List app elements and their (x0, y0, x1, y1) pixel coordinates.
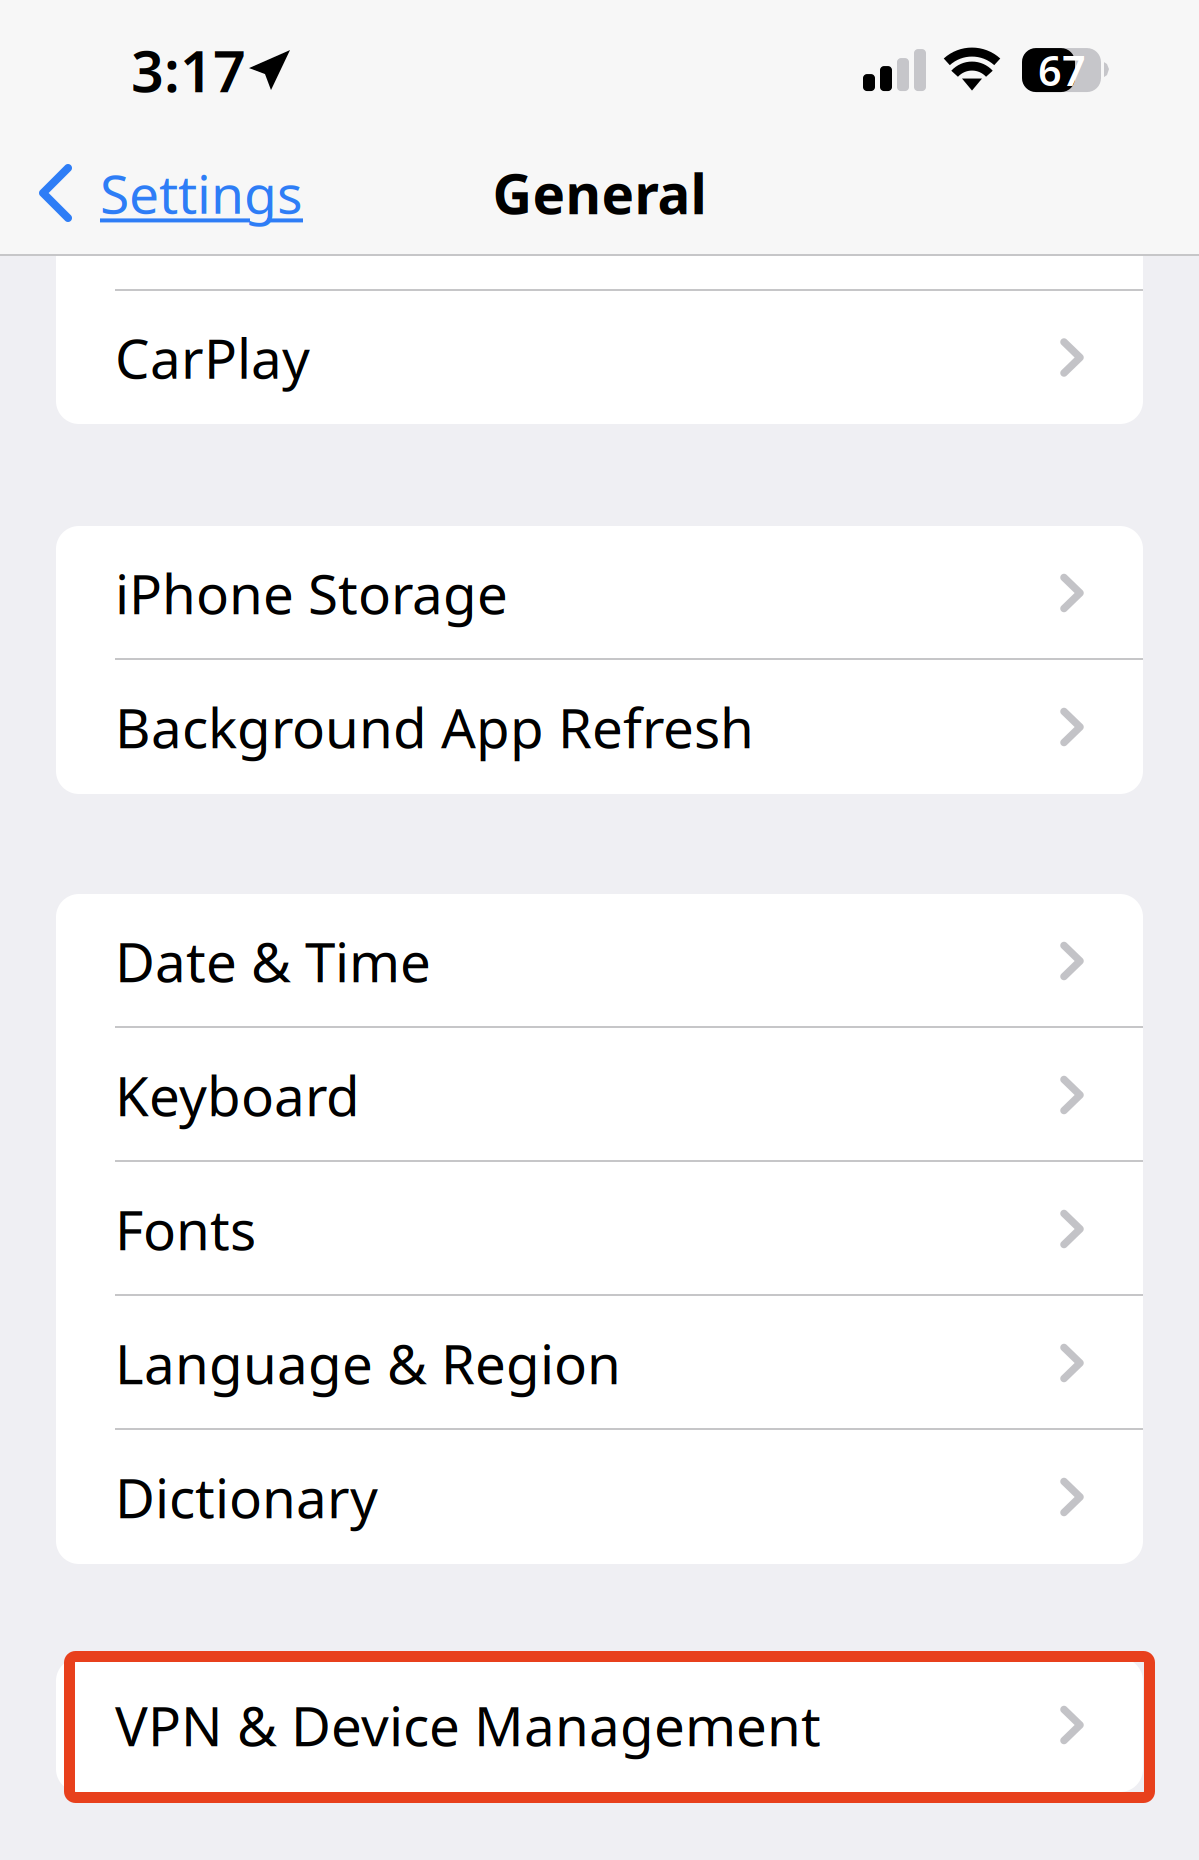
staticText: VPN & Device Management (115, 1689, 821, 1761)
staticText: CarPlay (115, 321, 310, 394)
staticText: 3:17 (131, 32, 246, 108)
button[interactable]: CarPlay (56, 291, 1143, 424)
staticText: Dictionary (115, 1461, 378, 1533)
button[interactable]: Date & Time (56, 894, 1143, 1028)
staticText: General (492, 157, 706, 229)
button[interactable]: iPhone Storage (56, 526, 1143, 660)
button[interactable]: Fonts (56, 1162, 1143, 1296)
staticText: Fonts (115, 1193, 256, 1265)
button[interactable]: Language & Region (56, 1296, 1143, 1430)
staticText: 67 (1038, 43, 1086, 97)
staticText: Background App Refresh (115, 691, 754, 763)
staticText: Settings (100, 158, 303, 228)
button[interactable]: Keyboard (56, 1028, 1143, 1162)
button[interactable]: Dictionary (56, 1430, 1143, 1564)
button[interactable]: Background App Refresh (56, 660, 1143, 794)
button[interactable]: VPN & Device Management (56, 1658, 1143, 1792)
staticText: Language & Region (115, 1327, 621, 1399)
staticText: Date & Time (115, 925, 431, 997)
staticText: Keyboard (115, 1059, 360, 1131)
staticText: iPhone Storage (115, 557, 508, 629)
button[interactable]: Settings (0, 152, 323, 234)
